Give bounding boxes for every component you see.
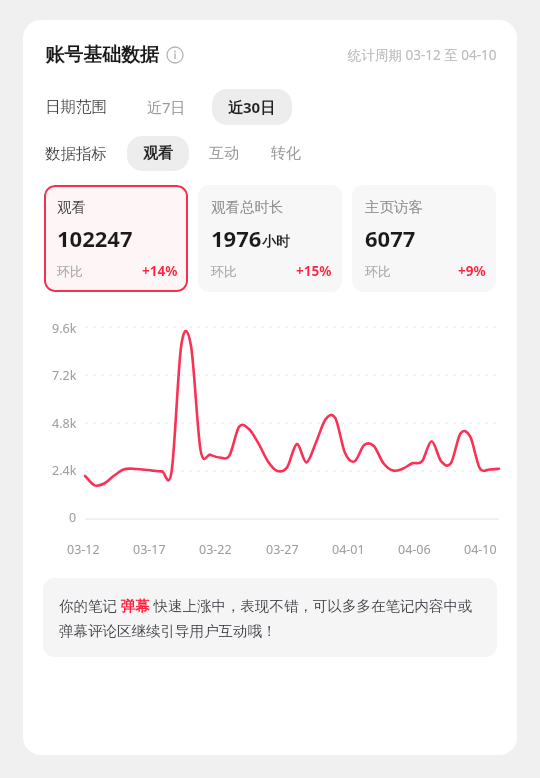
button[interactable]: 观看 <box>44 185 188 292</box>
staticText: 9.6k <box>52 320 77 337</box>
staticText: 主页访客 <box>365 198 423 216</box>
staticText: 04-06 <box>398 541 431 558</box>
button[interactable]: 近30日 <box>212 89 292 125</box>
staticText: 统计周期 03-12 至 04-10 <box>348 46 497 64</box>
staticText: 102247 <box>57 223 133 253</box>
staticText: 环比 <box>57 263 83 279</box>
staticText: 环比 <box>365 263 391 279</box>
staticText: 7.2k <box>52 367 77 384</box>
staticText: 04-01 <box>332 541 365 558</box>
button[interactable]: 观看总时长 <box>198 185 342 292</box>
staticText: 环比 <box>211 263 237 279</box>
staticText: 03-22 <box>199 541 232 558</box>
staticText: 03-17 <box>133 541 166 558</box>
staticText: 你的笔记 弹幕 快速上涨中，表现不错，可以多多在笔记内容中或弹幕评论区继续引导用… <box>59 595 481 640</box>
staticText: 03-27 <box>266 541 299 558</box>
staticText: 0 <box>69 509 77 526</box>
staticText: 03-12 <box>67 541 100 558</box>
staticText: 近30日 <box>228 97 276 117</box>
staticText: 账号基础数据 <box>45 43 159 67</box>
button[interactable]: 互动 <box>197 136 251 171</box>
button[interactable]: 你的笔记 弹幕 快速上涨中，表现不错，可以多多在笔记内容中或弹幕评论区继续引导用… <box>43 578 497 657</box>
staticText: 4.8k <box>52 415 77 432</box>
staticText: 1976 <box>211 223 262 253</box>
button[interactable]: 近7日 <box>133 89 200 125</box>
staticText: 转化 <box>271 144 301 163</box>
staticText: 互动 <box>209 144 239 163</box>
staticText: +15% <box>296 262 332 280</box>
staticText: +14% <box>142 262 178 280</box>
staticText: 6077 <box>365 223 416 253</box>
staticText: 04-10 <box>464 541 497 558</box>
button[interactable]: 说明 <box>166 46 184 64</box>
staticText: +9% <box>458 262 486 280</box>
staticText: 2.4k <box>52 462 77 479</box>
staticText: 观看总时长 <box>211 198 284 216</box>
staticText: 近7日 <box>147 97 186 117</box>
staticText: 数据指标 <box>45 144 107 164</box>
staticText: 小时 <box>262 233 290 251</box>
button[interactable]: 主页访客 <box>352 185 496 292</box>
staticText: 日期范围 <box>45 97 107 117</box>
staticText: 观看 <box>57 198 86 216</box>
button[interactable]: 观看 <box>127 136 189 171</box>
staticText: 观看 <box>143 144 173 163</box>
button[interactable]: 转化 <box>259 136 313 171</box>
